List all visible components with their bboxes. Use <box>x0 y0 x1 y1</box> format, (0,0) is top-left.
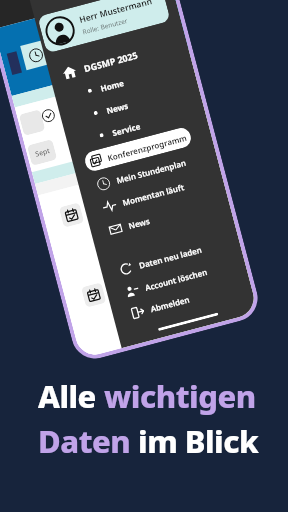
staticText: News <box>105 100 129 116</box>
button[interactable]: Abmelden <box>129 274 252 321</box>
button[interactable]: Service <box>98 102 198 143</box>
staticText: Daten neu laden <box>138 243 203 271</box>
button[interactable]: Account löschen <box>123 253 246 300</box>
button[interactable]: Konferenzprogramm <box>83 126 193 173</box>
staticText: DGSMP 2025 <box>82 48 140 74</box>
staticText: Konferenzprogramm <box>106 132 188 163</box>
staticText: im Blick <box>138 420 259 462</box>
staticText: Mein Stundenplan <box>115 157 188 186</box>
staticText: Momentan läuft <box>121 181 186 208</box>
button[interactable]: News <box>107 191 230 238</box>
staticText: Account löschen <box>144 266 208 293</box>
button[interactable]: Sept <box>27 139 57 166</box>
staticText: Herr Mustermann <box>78 0 154 26</box>
button[interactable]: Mein Stundenplan <box>95 146 218 193</box>
button[interactable]: DGSMP 2025 <box>60 45 140 83</box>
other: Status <box>40 108 56 124</box>
staticText: Rolle: Benutzer <box>81 16 129 36</box>
staticText: Daten <box>38 420 138 462</box>
staticText: Abmelden <box>149 293 191 314</box>
button[interactable]: Home <box>86 58 187 99</box>
button[interactable]: Termin <box>81 282 107 308</box>
staticText: Service <box>111 120 142 138</box>
staticText: wichtigen <box>104 375 256 417</box>
button[interactable]: Daten neu laden <box>118 231 241 278</box>
button[interactable]: Momentan läuft <box>101 168 224 215</box>
button[interactable]: Uhrzeit <box>20 40 51 70</box>
button[interactable]: Termin <box>59 202 84 228</box>
staticText: Home <box>99 77 125 94</box>
staticText: News <box>127 215 151 231</box>
staticText: Sept <box>34 146 51 160</box>
button[interactable]: Herr Mustermann <box>37 0 171 53</box>
button[interactable]: News <box>92 80 193 121</box>
staticText: Alle <box>38 375 104 417</box>
